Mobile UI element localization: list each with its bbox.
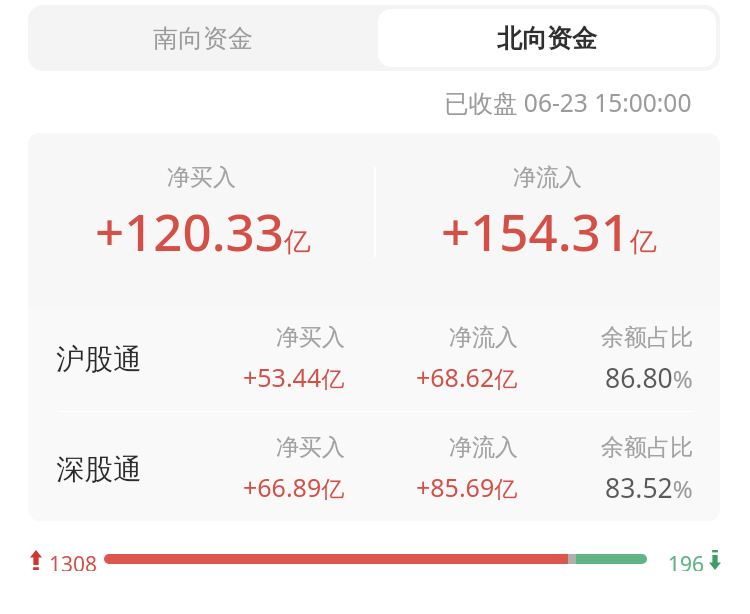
staticText: 沪股通: [56, 342, 142, 378]
staticText: 余额占比: [601, 433, 693, 462]
button[interactable]: 南向资金: [28, 5, 374, 71]
staticText: +120.33亿: [95, 196, 311, 265]
staticText: +66.89亿: [243, 470, 345, 504]
button[interactable]: 净流入: [374, 133, 720, 301]
staticText: 196: [668, 550, 705, 571]
staticText: 净买入: [276, 323, 345, 352]
staticText: 北向资金: [497, 23, 597, 54]
button[interactable]: 深股通: [28, 411, 720, 521]
staticText: 净买入: [167, 163, 236, 192]
staticText: +68.62亿: [416, 360, 518, 394]
button[interactable]: 净买入: [28, 133, 374, 301]
staticText: 已收盘 06-23 15:00:00: [444, 86, 692, 119]
staticText: +53.44亿: [243, 360, 345, 394]
staticText: 南向资金: [153, 23, 253, 54]
button[interactable]: 沪股通: [28, 301, 720, 411]
staticText: 净流入: [513, 163, 582, 192]
button[interactable]: 北向资金: [378, 9, 716, 67]
staticText: 深股通: [56, 452, 142, 488]
staticText: 余额占比: [601, 323, 693, 352]
staticText: 83.52%: [605, 470, 693, 506]
other: Advancing stocks: [30, 550, 42, 570]
staticText: 86.80%: [605, 360, 693, 396]
staticText: 净流入: [449, 323, 518, 352]
staticText: +85.69亿: [416, 470, 518, 504]
staticText: 1308: [49, 550, 98, 571]
staticText: 净流入: [449, 433, 518, 462]
other: Declining stocks: [709, 550, 721, 570]
staticText: +154.31亿: [441, 196, 657, 265]
staticText: 净买入: [276, 433, 345, 462]
